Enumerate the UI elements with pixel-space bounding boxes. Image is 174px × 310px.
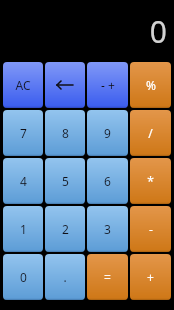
button[interactable]: 9 — [87, 110, 128, 156]
button[interactable]: 8 — [45, 110, 85, 156]
staticText: 7 — [20, 125, 27, 141]
staticText: 0 — [20, 269, 27, 285]
staticText: 2 — [62, 221, 69, 237]
staticText: . — [63, 269, 67, 285]
button[interactable]: 5 — [45, 158, 85, 204]
staticText: % — [146, 77, 156, 93]
staticText: 5 — [62, 173, 69, 189]
staticText: + — [147, 269, 154, 285]
button[interactable]: . — [45, 254, 85, 300]
staticText: 3 — [104, 221, 111, 237]
button[interactable]: 1 — [3, 206, 43, 252]
button[interactable]: / — [130, 110, 171, 156]
button[interactable]: % — [130, 62, 171, 108]
button[interactable]: + — [130, 254, 171, 300]
button[interactable]: 2 — [45, 206, 85, 252]
staticText: = — [104, 269, 111, 285]
button[interactable]: - — [130, 206, 171, 252]
button[interactable]: 0 — [3, 254, 43, 300]
staticText: AC — [15, 77, 31, 93]
button[interactable]: 4 — [3, 158, 43, 204]
button[interactable]: - + — [87, 62, 128, 108]
button[interactable]: Backspace — [45, 62, 85, 108]
button[interactable]: = — [87, 254, 128, 300]
staticText: 0 — [149, 11, 167, 52]
staticText: - — [149, 221, 153, 237]
staticText: 4 — [20, 173, 27, 189]
button[interactable]: 7 — [3, 110, 43, 156]
button[interactable]: * — [130, 158, 171, 204]
staticText: 8 — [62, 125, 69, 141]
button[interactable]: 6 — [87, 158, 128, 204]
button[interactable]: AC — [3, 62, 43, 108]
staticText: 6 — [104, 173, 111, 189]
staticText: / — [148, 125, 153, 141]
staticText: 9 — [104, 125, 111, 141]
button[interactable]: 3 — [87, 206, 128, 252]
staticText: 1 — [20, 221, 27, 237]
staticText: * — [147, 173, 154, 189]
staticText: - + — [101, 77, 115, 93]
